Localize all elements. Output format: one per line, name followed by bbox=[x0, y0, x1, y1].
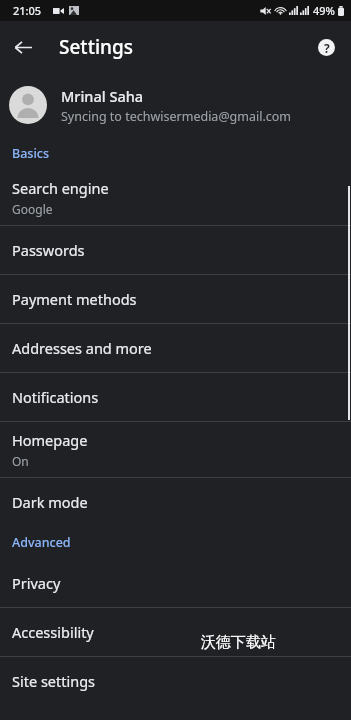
staticText: Passwords bbox=[12, 240, 85, 260]
staticText: Addresses and more bbox=[12, 338, 152, 358]
button[interactable]: Back bbox=[4, 28, 42, 66]
button[interactable]: Site settings bbox=[0, 657, 351, 705]
staticText: 沃德下载站 bbox=[201, 633, 276, 652]
button[interactable]: Payment methods bbox=[0, 275, 351, 323]
button[interactable]: Notifications bbox=[0, 373, 351, 421]
button[interactable]: Help bbox=[307, 28, 345, 66]
staticText: Basics bbox=[12, 145, 49, 162]
staticText: Privacy bbox=[12, 573, 61, 593]
button[interactable]: Search engine bbox=[0, 170, 351, 225]
button[interactable]: Privacy bbox=[0, 559, 351, 607]
button[interactable]: Mrinal Saha bbox=[0, 73, 351, 137]
button[interactable]: Dark mode bbox=[0, 478, 351, 526]
staticText: 21:05 bbox=[13, 3, 42, 18]
staticText: Dark mode bbox=[12, 492, 88, 512]
staticText: 49% bbox=[313, 3, 335, 18]
staticText: Homepage bbox=[12, 430, 88, 450]
button[interactable]: Passwords bbox=[0, 226, 351, 274]
button[interactable]: Accessibility bbox=[0, 608, 351, 656]
staticText: Advanced bbox=[12, 534, 71, 551]
staticText: Google bbox=[12, 201, 53, 217]
staticText: Notifications bbox=[12, 387, 99, 407]
staticText: Payment methods bbox=[12, 289, 137, 309]
staticText: Settings bbox=[59, 34, 133, 60]
staticText: ? bbox=[324, 40, 330, 56]
button[interactable]: Homepage bbox=[0, 422, 351, 477]
button[interactable]: Addresses and more bbox=[0, 324, 351, 372]
staticText: Accessibility bbox=[12, 622, 94, 642]
staticText: Mrinal Saha bbox=[61, 86, 144, 106]
staticText: On bbox=[12, 453, 29, 469]
staticText: Site settings bbox=[12, 671, 96, 691]
staticText: Syncing to techwisermedia@gmail.com bbox=[61, 108, 292, 125]
staticText: Search engine bbox=[12, 178, 109, 198]
